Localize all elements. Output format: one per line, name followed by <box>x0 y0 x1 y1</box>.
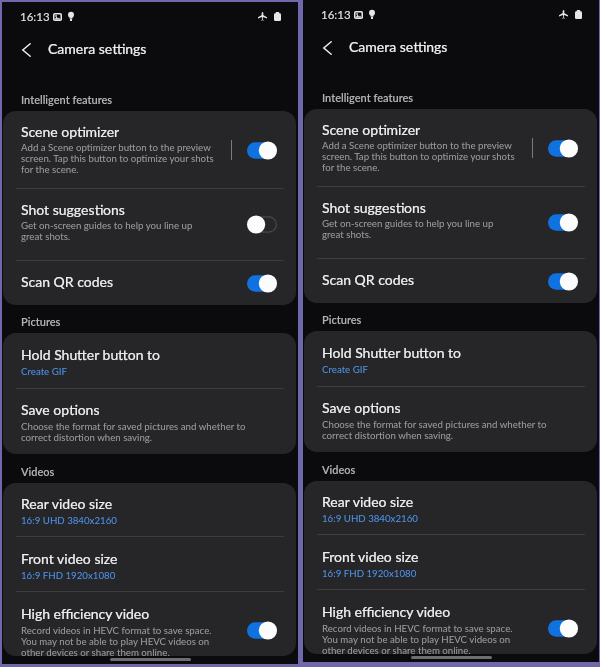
button[interactable]: Hold Shutter button to <box>304 331 597 386</box>
staticText: Choose the format for saved pictures and… <box>322 418 550 442</box>
button[interactable]: Scene optimizer <box>304 109 597 186</box>
staticText: Intelligent features <box>21 93 113 106</box>
staticText: Create GIF <box>21 365 67 377</box>
staticText: Choose the format for saved pictures and… <box>21 420 249 444</box>
staticText: Add a Scene optimizer button to the prev… <box>322 139 516 174</box>
staticText: 16:13 <box>20 10 50 24</box>
staticText: 16:9 UHD 3840x2160 <box>21 514 117 526</box>
staticText: Save options <box>322 399 401 416</box>
staticText: Front video size <box>21 550 118 567</box>
staticText: Front video size <box>322 548 419 565</box>
button[interactable]: Save options <box>304 387 597 452</box>
button[interactable]: Rear video size <box>304 481 597 534</box>
staticText: Scan QR codes <box>21 273 113 290</box>
button[interactable]: Enabled <box>548 619 578 638</box>
staticText: 16:9 UHD 3840x2160 <box>322 512 418 524</box>
staticText: Videos <box>21 465 55 478</box>
button[interactable]: Front video size <box>304 535 597 589</box>
staticText: Get on-screen guides to help you line up… <box>322 217 500 241</box>
staticText: Create GIF <box>322 363 368 375</box>
button[interactable]: Navigate up <box>13 37 39 63</box>
button[interactable]: Enabled <box>247 141 277 160</box>
staticText: Camera settings <box>48 40 147 57</box>
button[interactable]: Enabled <box>247 274 277 293</box>
staticText: Hold Shutter button to <box>21 346 160 363</box>
staticText: 16:13 <box>321 8 351 22</box>
staticText: Save options <box>21 401 100 418</box>
staticText: Record videos in HEVC format to save spa… <box>21 624 223 656</box>
button[interactable]: Front video size <box>3 537 296 591</box>
button[interactable]: Hold Shutter button to <box>3 333 296 388</box>
staticText: Camera settings <box>349 38 448 55</box>
staticText: Add a Scene optimizer button to the prev… <box>21 141 215 176</box>
staticText: Scene optimizer <box>322 121 421 138</box>
button[interactable]: Enabled <box>548 213 578 232</box>
button[interactable]: High efficiency video <box>304 590 597 654</box>
button[interactable]: Shot suggestions <box>304 187 597 258</box>
staticText: 16:9 FHD 1920x1080 <box>21 569 116 581</box>
staticText: Intelligent features <box>322 91 414 104</box>
staticText: High efficiency video <box>322 603 451 620</box>
staticText: Get on-screen guides to help you line up… <box>21 219 199 243</box>
staticText: Pictures <box>322 313 362 326</box>
button[interactable]: Enabled <box>548 139 578 158</box>
staticText: Rear video size <box>322 493 414 510</box>
button[interactable]: Save options <box>3 389 296 454</box>
button[interactable]: Scan QR codes <box>3 261 296 305</box>
button[interactable]: High efficiency video <box>3 592 296 656</box>
staticText: Scan QR codes <box>322 271 414 288</box>
staticText: Videos <box>322 463 356 476</box>
button[interactable]: Scan QR codes <box>304 259 597 303</box>
staticText: Record videos in HEVC format to save spa… <box>322 622 524 654</box>
button[interactable]: Disabled <box>247 215 277 234</box>
staticText: Hold Shutter button to <box>322 344 461 361</box>
staticText: 16:9 FHD 1920x1080 <box>322 567 417 579</box>
staticText: Pictures <box>21 315 61 328</box>
staticText: Shot suggestions <box>21 201 125 218</box>
button[interactable]: Enabled <box>548 272 578 291</box>
button[interactable]: Shot suggestions <box>3 189 296 260</box>
staticText: High efficiency video <box>21 605 150 622</box>
button[interactable]: Scene optimizer <box>3 111 296 188</box>
button[interactable]: Rear video size <box>3 483 296 536</box>
button[interactable]: Enabled <box>247 621 277 640</box>
button[interactable]: Navigate up <box>314 35 340 61</box>
staticText: Shot suggestions <box>322 199 426 216</box>
staticText: Scene optimizer <box>21 123 120 140</box>
staticText: Rear video size <box>21 495 113 512</box>
